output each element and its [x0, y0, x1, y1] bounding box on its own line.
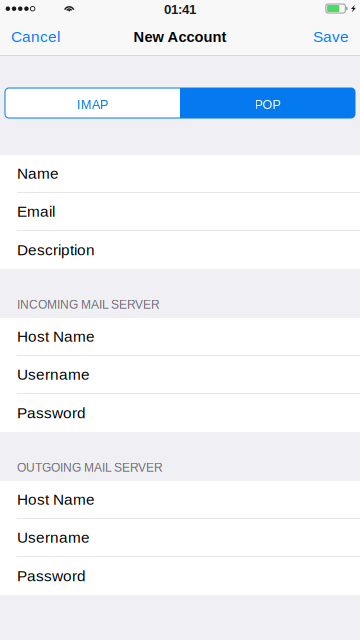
button[interactable]: POP — [180, 88, 355, 118]
button[interactable]: Save — [301, 17, 360, 54]
staticText: INCOMING MAIL SERVER — [17, 298, 160, 311]
button[interactable]: Username — [0, 356, 360, 394]
button[interactable]: Description — [0, 231, 360, 269]
button[interactable]: Password — [0, 394, 360, 432]
staticText: Host Name — [17, 328, 95, 345]
staticText: Name — [17, 165, 59, 182]
button[interactable]: Email — [0, 193, 360, 231]
button[interactable]: Password — [0, 557, 360, 595]
staticText: Email — [17, 203, 55, 220]
staticText: Username — [17, 529, 90, 546]
button[interactable]: Name — [0, 155, 360, 193]
staticText: Description — [17, 241, 95, 258]
staticText: POP — [254, 97, 280, 112]
button[interactable]: IMAP — [5, 88, 180, 118]
button[interactable]: Username — [0, 519, 360, 557]
button[interactable]: Cancel — [0, 17, 72, 54]
button[interactable]: Host Name — [0, 481, 360, 519]
staticText: Password — [17, 567, 86, 584]
staticText: Host Name — [17, 491, 95, 508]
staticText: Save — [313, 28, 349, 45]
staticText: IMAP — [77, 97, 108, 112]
button[interactable]: Host Name — [0, 318, 360, 356]
staticText: Password — [17, 404, 86, 421]
staticText: 01:41 — [164, 2, 196, 17]
staticText: Username — [17, 366, 90, 383]
staticText: Cancel — [11, 28, 60, 45]
staticText: OUTGOING MAIL SERVER — [17, 461, 163, 474]
staticText: New Account — [133, 29, 226, 45]
